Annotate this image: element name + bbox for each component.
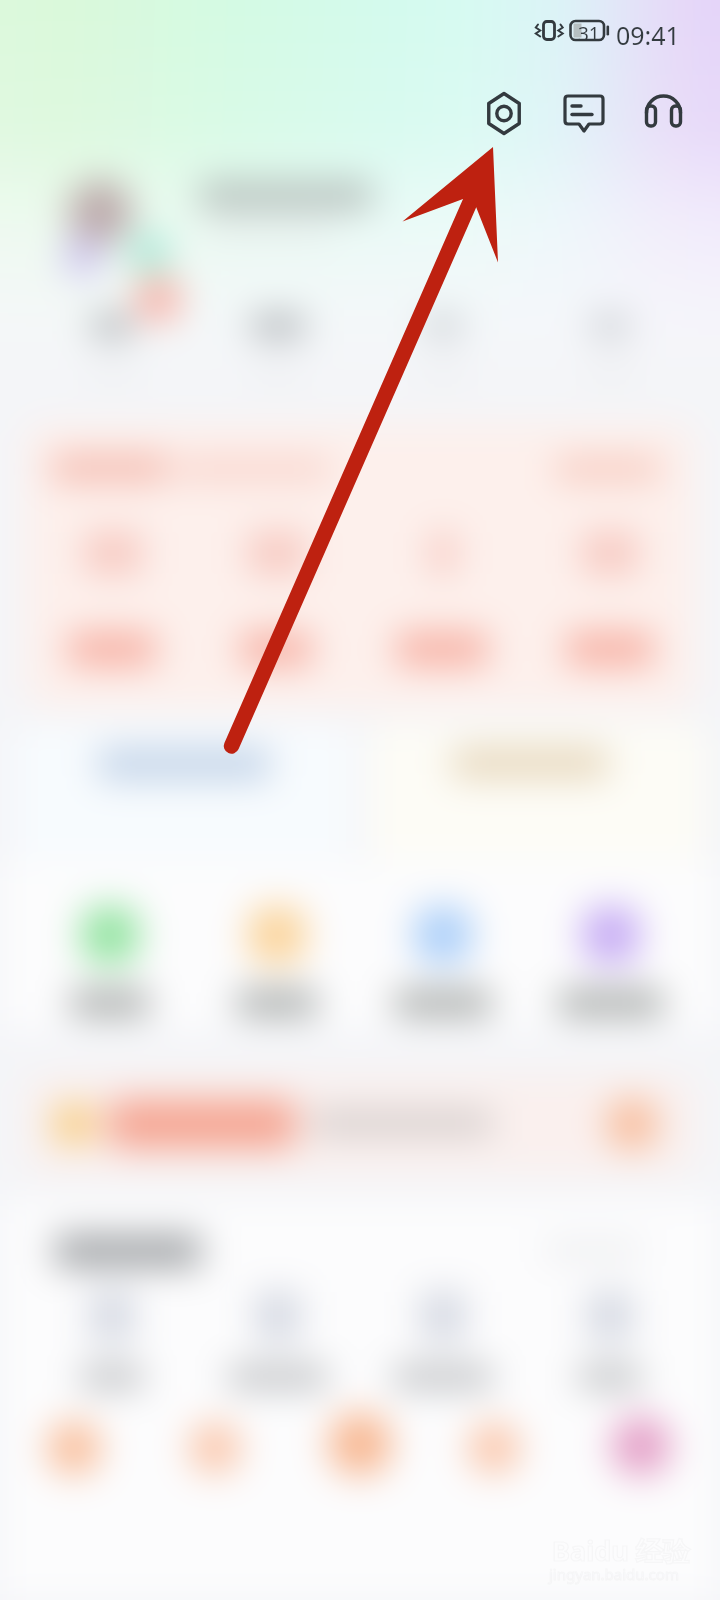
button[interactable]: Messages [558,87,610,139]
button[interactable] [588,1292,632,1340]
button[interactable] [81,906,139,964]
staticText: 09:41 [616,18,680,52]
button[interactable] [90,1292,134,1340]
button[interactable] [414,906,472,964]
button[interactable] [582,906,640,964]
button[interactable] [256,1292,300,1340]
button[interactable]: Customer service [638,87,690,139]
button[interactable]: Settings [478,87,530,139]
button[interactable] [248,906,306,964]
button[interactable] [25,1074,695,1174]
staticText: 31 [578,21,600,47]
button[interactable] [421,1292,465,1340]
